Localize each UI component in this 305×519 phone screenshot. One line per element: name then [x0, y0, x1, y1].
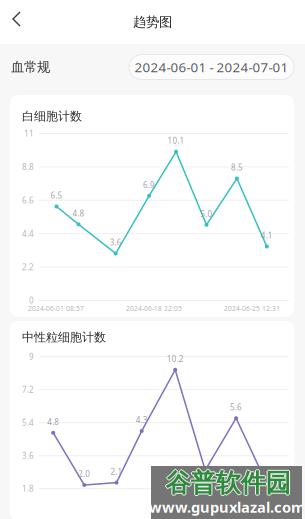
staticText: 6.5	[50, 190, 62, 201]
staticText: 6.6	[22, 195, 34, 206]
staticText: 2024-06-18 22:05	[126, 304, 182, 313]
staticText: 4.8	[72, 208, 84, 219]
staticText: 血常规	[11, 59, 50, 75]
button[interactable]: 2024-06-01 - 2024-07-01	[129, 54, 294, 79]
staticText: 中性粒细胞计数	[22, 330, 106, 345]
staticText: 白细胞计数	[22, 109, 82, 124]
staticText: 2.2	[22, 262, 34, 272]
staticText: 5.4	[22, 417, 34, 428]
staticText: 2024-06-01 - 2024-07-01	[134, 58, 288, 76]
staticText: 11	[24, 128, 34, 139]
staticText: 8.8	[22, 162, 34, 172]
staticText: 2.0	[78, 469, 90, 479]
staticText: 8.5	[231, 162, 243, 173]
staticText: 趋势图	[133, 14, 172, 30]
staticText: 10.2	[167, 353, 184, 364]
staticText: 2024-06-01 08:57	[28, 304, 84, 313]
staticText: 6.9	[143, 179, 155, 190]
staticText: 谷普软件园	[165, 467, 290, 498]
staticText: 4.3	[136, 415, 148, 425]
staticText: 1.8	[22, 483, 34, 494]
staticText: 7.2	[22, 384, 34, 395]
staticText: 5.0	[200, 208, 212, 219]
staticText: www.gupuxlazal.com	[149, 497, 305, 517]
staticText: 2024-06-25 12:31	[224, 304, 280, 313]
staticText: 谷普软件园	[166, 467, 291, 498]
staticText: 9	[29, 351, 34, 362]
staticText: 4.8	[47, 416, 59, 427]
staticText: 5.6	[230, 402, 242, 412]
staticText: 3.6	[110, 237, 122, 248]
staticText: 4.4	[22, 228, 34, 239]
staticText: 谷普软件园	[165, 466, 290, 497]
staticText: 0	[29, 295, 34, 306]
staticText: 谷普软件园	[164, 467, 289, 498]
staticText: 10.1	[168, 135, 185, 146]
staticText: 2.1	[110, 466, 122, 477]
staticText: 谷普软件园	[165, 468, 290, 499]
button[interactable]: Back	[6, 7, 36, 37]
staticText: 3.6	[22, 450, 34, 461]
staticText: 4.1	[261, 230, 273, 241]
